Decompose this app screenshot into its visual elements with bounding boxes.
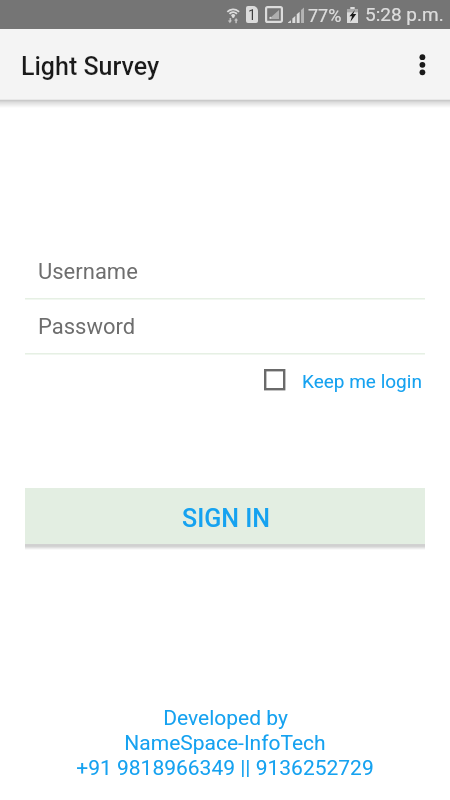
staticText: Username [38, 259, 138, 285]
staticText: Keep me login [302, 370, 422, 392]
staticText: 77% [308, 5, 342, 26]
staticText: Light Survey [21, 52, 160, 81]
button[interactable]: More options [398, 40, 446, 88]
staticText: NameSpace-InfoTech [124, 731, 326, 756]
button[interactable]: Password [25, 307, 425, 347]
staticText: 5:28 p.m. [365, 3, 444, 25]
staticText: Password [38, 314, 136, 340]
staticText: Developed by [163, 706, 288, 731]
button[interactable]: Keep me login [264, 369, 422, 391]
button[interactable]: Username [25, 252, 425, 292]
button[interactable]: SIGN IN [25, 488, 425, 544]
staticText: SIGN IN [182, 504, 271, 533]
staticText: +91 9818966349 || 9136252729 [76, 756, 374, 781]
staticText: 1 [248, 7, 256, 23]
